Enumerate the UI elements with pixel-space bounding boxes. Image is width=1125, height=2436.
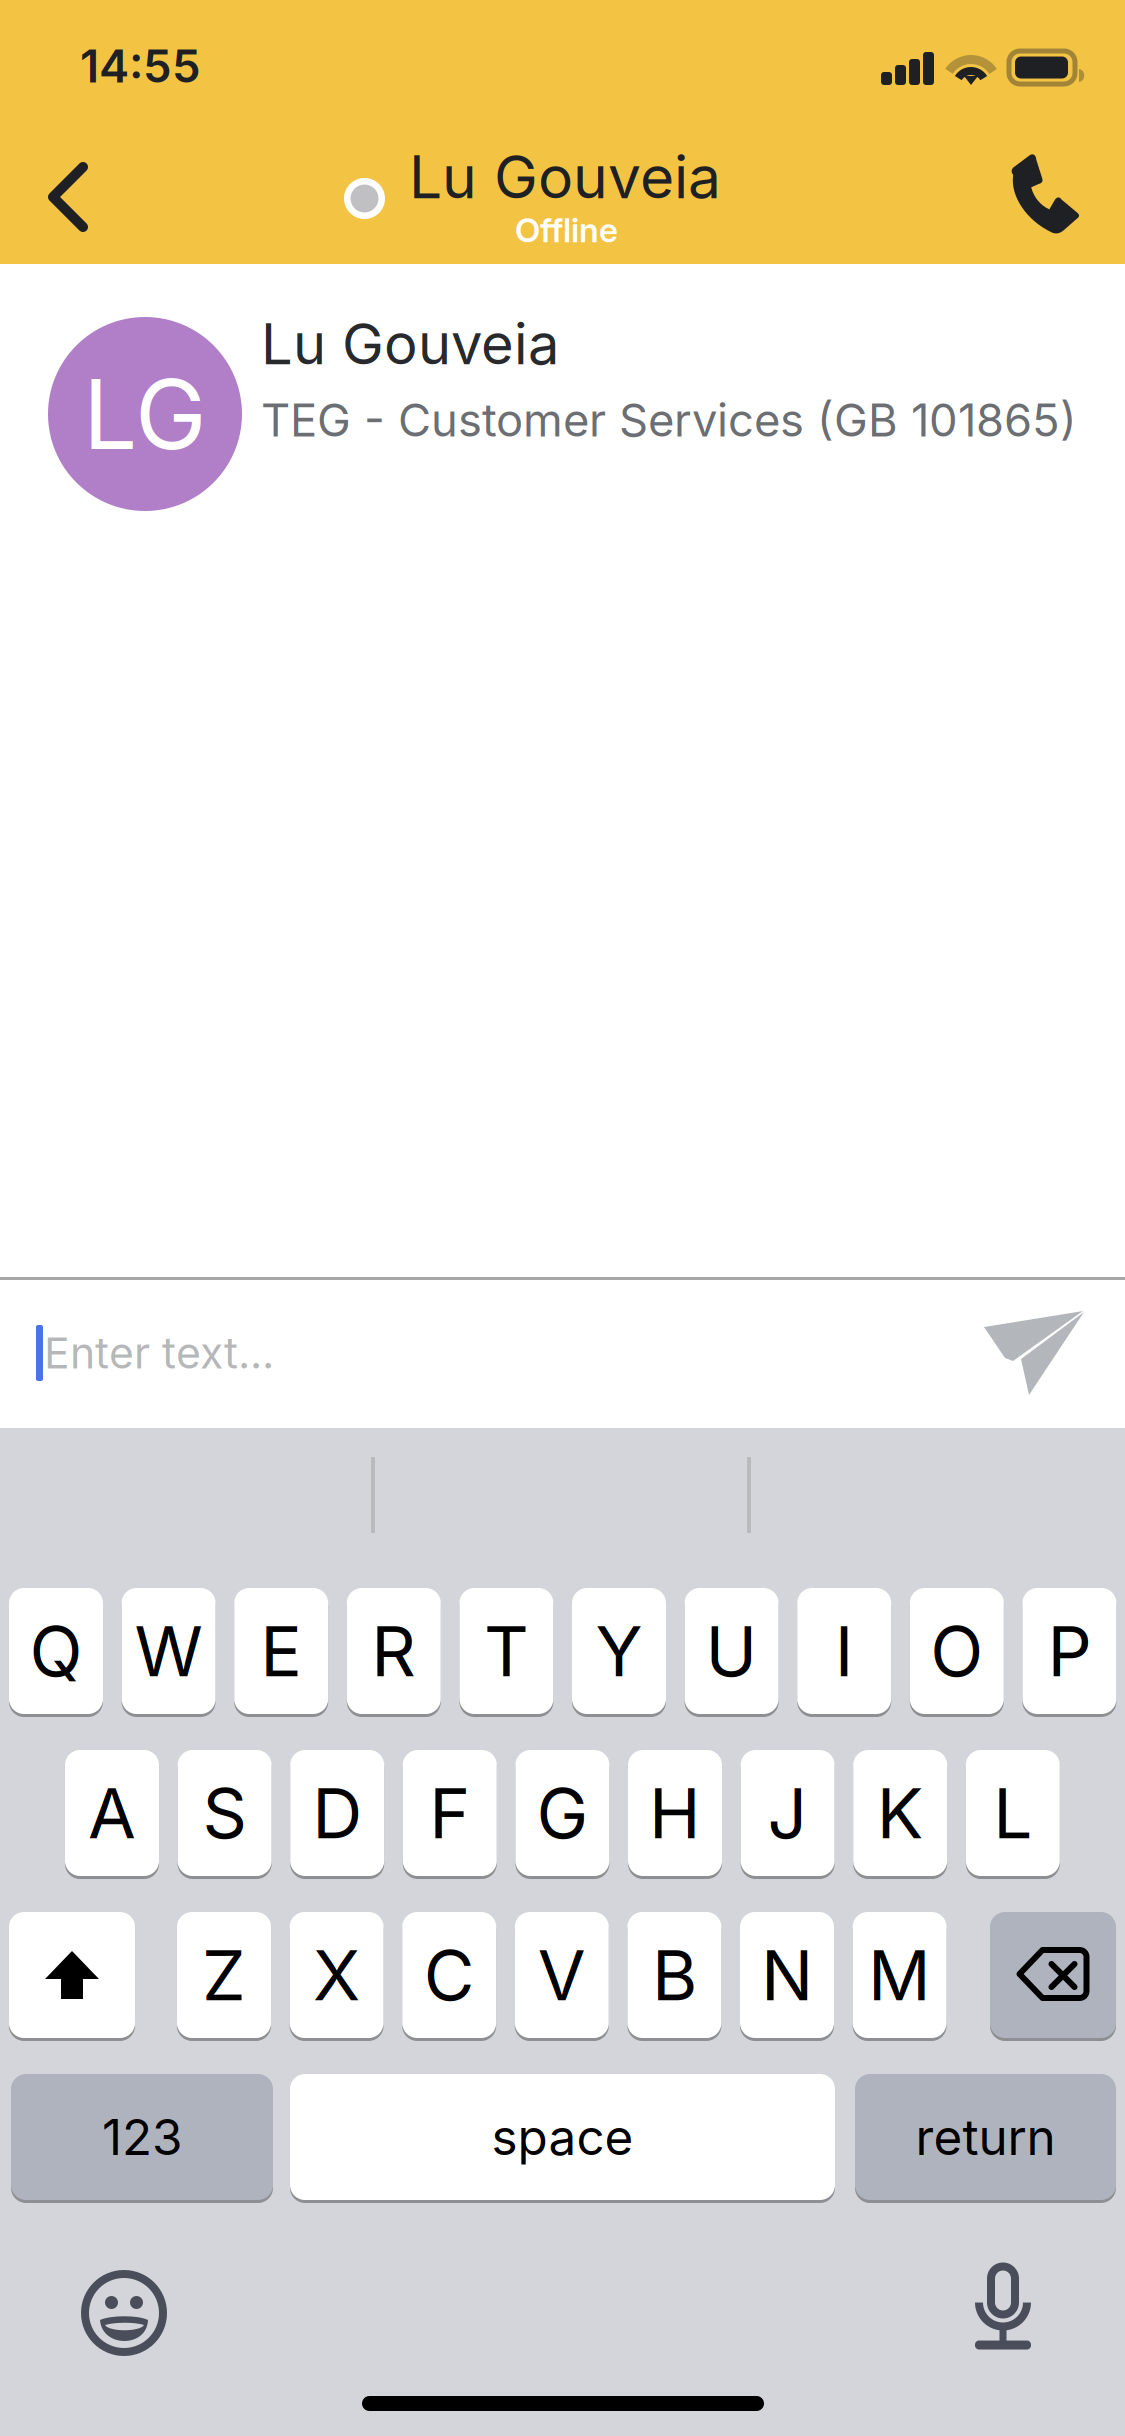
staticText: P <box>1047 1609 1091 1693</box>
button[interactable]: S <box>178 1747 272 1879</box>
button[interactable]: Delete <box>990 1909 1116 2041</box>
button[interactable]: space <box>290 2071 835 2203</box>
button[interactable]: return <box>855 2071 1116 2203</box>
button[interactable]: C <box>402 1909 496 2041</box>
staticText: Y <box>595 1609 642 1693</box>
staticText: S <box>203 1771 247 1855</box>
staticText: LG <box>83 356 207 472</box>
button[interactable]: Q <box>9 1585 103 1717</box>
button[interactable]: 123 <box>11 2071 273 2203</box>
staticText: Q <box>29 1609 82 1693</box>
button[interactable]: T <box>459 1585 553 1717</box>
button[interactable]: Dictation <box>938 2248 1068 2364</box>
staticText: 14:55 <box>80 39 201 93</box>
staticText: Z <box>202 1933 246 2017</box>
staticText: J <box>768 1771 808 1855</box>
button[interactable]: Back <box>8 138 128 256</box>
button[interactable]: V <box>515 1909 609 2041</box>
staticText: E <box>260 1609 302 1693</box>
button[interactable]: Shift <box>9 1909 135 2041</box>
button[interactable]: L <box>966 1747 1060 1879</box>
staticText: U <box>706 1609 758 1693</box>
staticText: A <box>88 1771 136 1855</box>
button[interactable]: H <box>628 1747 722 1879</box>
staticText: I <box>835 1609 854 1693</box>
button[interactable]: U <box>685 1585 779 1717</box>
staticText: return <box>915 2107 1055 2167</box>
button[interactable]: Emoji <box>59 2255 189 2371</box>
staticText: L <box>993 1771 1032 1855</box>
button[interactable]: I <box>797 1585 891 1717</box>
button[interactable]: P <box>1022 1585 1116 1717</box>
staticText: Offline <box>515 210 618 250</box>
staticText: Lu Gouveia <box>409 141 721 212</box>
button[interactable]: O <box>910 1585 1004 1717</box>
staticText: C <box>424 1933 475 2017</box>
staticText: TEG - Customer Services (GB 101865) <box>261 393 1077 447</box>
staticText: W <box>135 1609 203 1693</box>
staticText: G <box>536 1771 588 1855</box>
button[interactable]: X <box>290 1909 384 2041</box>
staticText: 123 <box>102 2107 182 2167</box>
staticText: Enter text... <box>44 1327 274 1379</box>
button[interactable]: E <box>234 1585 328 1717</box>
button[interactable]: D <box>290 1747 384 1879</box>
staticText: T <box>484 1609 529 1693</box>
staticText: B <box>652 1933 697 2017</box>
staticText: V <box>538 1933 586 2017</box>
staticText: space <box>491 2107 633 2167</box>
button[interactable]: N <box>740 1909 834 2041</box>
button[interactable]: Z <box>177 1909 271 2041</box>
button[interactable]: F <box>403 1747 497 1879</box>
staticText: D <box>312 1771 362 1855</box>
button[interactable]: G <box>515 1747 609 1879</box>
button[interactable]: K <box>853 1747 947 1879</box>
staticText: X <box>313 1933 360 2017</box>
button[interactable]: W <box>122 1585 216 1717</box>
staticText: H <box>649 1771 701 1855</box>
button[interactable]: Call <box>981 136 1111 254</box>
button[interactable]: J <box>741 1747 835 1879</box>
button[interactable]: Send <box>956 1280 1112 1428</box>
button[interactable]: Y <box>572 1585 666 1717</box>
button[interactable]: B <box>627 1909 721 2041</box>
button[interactable]: A <box>65 1747 159 1879</box>
staticText: R <box>371 1609 416 1693</box>
staticText: Lu Gouveia <box>261 310 559 378</box>
button[interactable]: R <box>347 1585 441 1717</box>
staticText: N <box>761 1933 813 2017</box>
staticText: O <box>930 1609 983 1693</box>
staticText: F <box>429 1771 470 1855</box>
button[interactable]: M <box>853 1909 947 2041</box>
staticText: M <box>868 1933 931 2017</box>
staticText: K <box>877 1771 924 1855</box>
